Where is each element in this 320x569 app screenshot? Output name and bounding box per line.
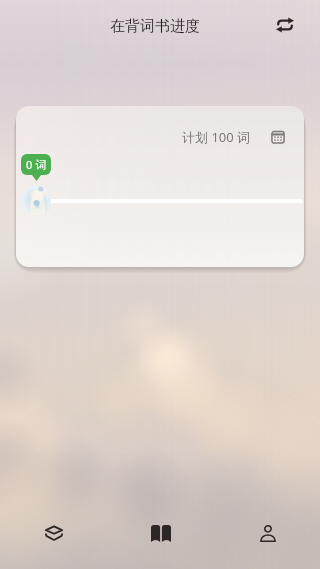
staticText: 0 词 (26, 157, 47, 172)
staticText: 计划 100 词 (182, 128, 251, 146)
button[interactable]: Profile (245, 511, 290, 556)
button[interactable]: 0 词 (21, 154, 51, 175)
staticText: 在背词书进度 (110, 17, 200, 36)
button[interactable]: Wordbook (138, 511, 183, 556)
button[interactable]: Switch wordbook (268, 8, 302, 42)
button[interactable] (16, 106, 304, 267)
button[interactable]: Cards (31, 511, 76, 556)
button[interactable]: Avatar (21, 186, 51, 216)
button[interactable]: 计划 100 词 (182, 128, 286, 146)
